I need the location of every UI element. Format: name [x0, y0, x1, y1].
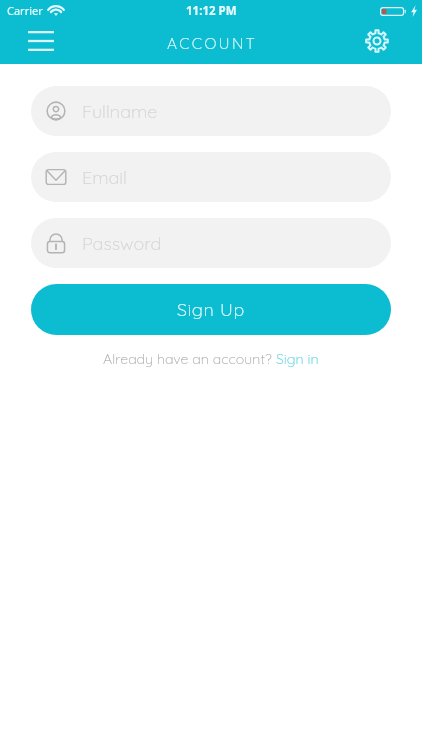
staticText: Sign Up [177, 298, 245, 321]
button[interactable]: Email [31, 152, 391, 202]
staticText: Fullname [82, 100, 158, 123]
staticText: Already have an account? [103, 350, 276, 368]
staticText: ACCOUNT [167, 33, 258, 52]
staticText: 11:12 PM [186, 3, 237, 19]
button[interactable]: Password [31, 218, 391, 268]
button[interactable]: Menu [24, 24, 58, 58]
staticText: Password [82, 232, 162, 255]
button[interactable]: Sign in [276, 350, 319, 368]
staticText: Sign in [276, 350, 319, 368]
staticText: Email [82, 166, 127, 189]
button[interactable]: Settings [361, 25, 393, 57]
staticText: Carrier [7, 3, 43, 18]
button[interactable]: Sign Up [31, 284, 391, 335]
button[interactable]: Fullname [31, 86, 391, 136]
